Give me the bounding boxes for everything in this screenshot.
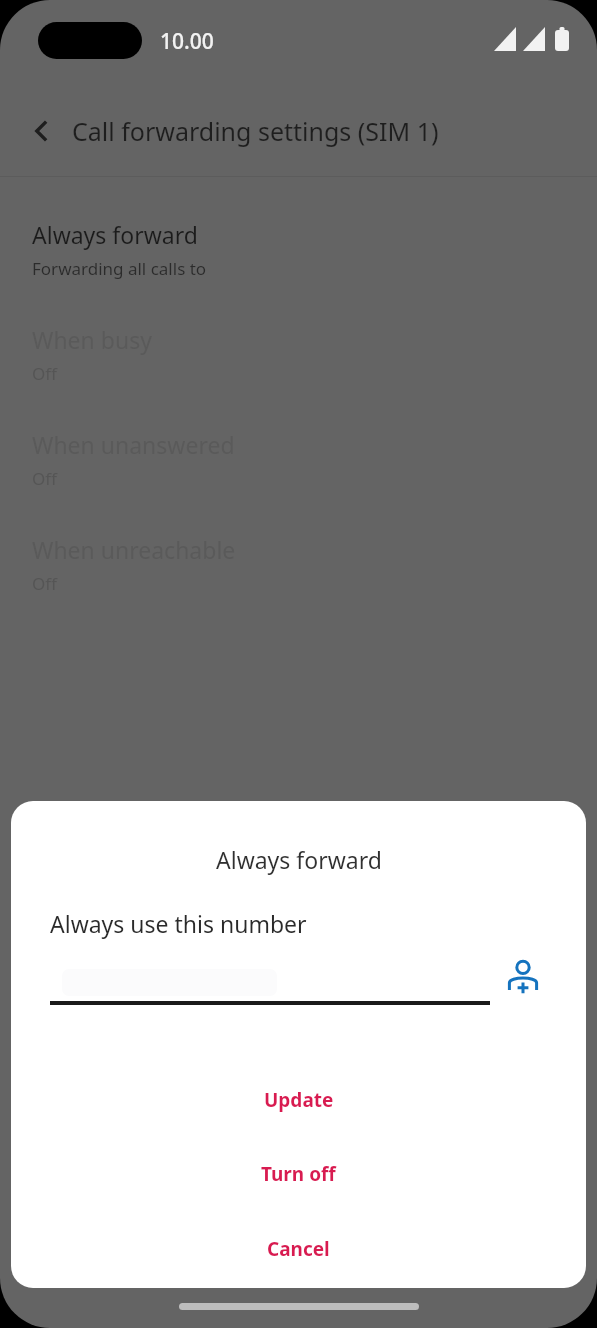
staticText: When busy xyxy=(32,324,152,355)
staticText: Forwarding all calls to xyxy=(32,257,207,280)
staticText: Off xyxy=(32,572,57,595)
staticText: When unanswered xyxy=(32,429,235,460)
staticText: Update xyxy=(264,1087,334,1113)
staticText: Call forwarding settings (SIM 1) xyxy=(72,114,439,148)
staticText: Always forward xyxy=(32,219,198,250)
staticText: Off xyxy=(32,362,57,385)
button[interactable]: Choose contact xyxy=(492,947,554,1009)
button[interactable]: Always forward xyxy=(0,176,597,282)
staticText: Turn off xyxy=(261,1161,336,1187)
button[interactable]: Cancel xyxy=(11,1225,586,1273)
button[interactable]: Back xyxy=(18,107,66,155)
staticText: Cancel xyxy=(267,1236,330,1262)
button[interactable]: Update xyxy=(11,1076,586,1124)
button[interactable]: Turn off xyxy=(11,1150,586,1198)
staticText: 10.00 xyxy=(160,27,214,56)
button[interactable] xyxy=(50,964,490,1008)
staticText: Always forward xyxy=(216,844,382,875)
staticText: Off xyxy=(32,467,57,490)
staticText: When unreachable xyxy=(32,534,236,565)
staticText: Always use this number xyxy=(50,908,307,939)
